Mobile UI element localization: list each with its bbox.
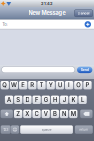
staticText: G	[44, 96, 48, 103]
staticText: C	[34, 110, 38, 117]
staticText: S	[16, 96, 20, 103]
button[interactable]: X	[23, 110, 31, 118]
button[interactable]: Z	[14, 110, 22, 118]
button[interactable]: T	[37, 81, 46, 89]
button[interactable]: K	[69, 96, 77, 104]
staticText: D	[25, 96, 29, 103]
button[interactable]: V	[42, 110, 50, 118]
button[interactable]: L	[78, 96, 87, 104]
button[interactable]: C	[32, 110, 41, 118]
staticText: return	[79, 128, 88, 132]
button[interactable]: W	[10, 81, 18, 89]
staticText: T	[39, 82, 43, 89]
staticText: H	[53, 96, 57, 103]
button[interactable]: return	[75, 125, 93, 134]
staticText: J	[63, 96, 66, 103]
button[interactable]: 123	[1, 125, 11, 134]
staticText: O	[76, 82, 80, 89]
staticText: Y	[49, 82, 53, 89]
button[interactable]: Add contact	[84, 20, 92, 28]
staticText: Send	[81, 68, 89, 72]
staticText: Z	[16, 110, 20, 117]
staticText: L	[81, 96, 84, 103]
staticText: P	[85, 82, 89, 89]
button[interactable]: F	[32, 96, 41, 104]
staticText: 123	[3, 127, 8, 132]
staticText: I	[68, 82, 70, 89]
staticText: To:	[2, 22, 8, 27]
button[interactable]: M	[69, 110, 77, 118]
staticText: N	[62, 110, 66, 117]
staticText: U	[58, 82, 62, 89]
staticText: space	[41, 128, 51, 132]
staticText: New Message	[28, 9, 65, 16]
button[interactable]: G	[42, 96, 50, 104]
button[interactable]	[1, 110, 13, 118]
button[interactable]: A	[5, 96, 13, 104]
staticText: K	[71, 96, 75, 103]
button[interactable]: Cancel	[74, 10, 93, 17]
button[interactable]	[80, 110, 92, 118]
staticText: A	[7, 96, 11, 103]
staticText: F	[35, 96, 38, 103]
button[interactable]: H	[51, 96, 59, 104]
button[interactable]: Q	[1, 81, 9, 89]
staticText: R	[30, 82, 34, 89]
button[interactable]: I	[65, 81, 73, 89]
staticText: W	[11, 82, 17, 89]
button[interactable]: B	[51, 110, 59, 118]
staticText: B	[53, 110, 57, 117]
button[interactable]: R	[28, 81, 36, 89]
button[interactable]: P	[83, 81, 92, 89]
button[interactable]: D	[23, 96, 32, 104]
button[interactable]: J	[60, 96, 68, 104]
button[interactable]: Send	[77, 67, 92, 73]
staticText: E	[21, 82, 25, 89]
staticText: Cancel	[78, 11, 90, 15]
button[interactable]: N	[60, 110, 68, 118]
button[interactable]: space	[20, 125, 73, 134]
staticText: V	[44, 110, 48, 117]
button[interactable]: S	[14, 96, 22, 104]
staticText: 21:42	[41, 1, 53, 6]
button[interactable]: E	[19, 81, 27, 89]
staticText: X	[25, 110, 29, 117]
button[interactable]: O	[74, 81, 82, 89]
button[interactable]: U	[56, 81, 64, 89]
staticText: Q	[2, 82, 7, 89]
button[interactable]	[11, 125, 19, 134]
staticText: M	[71, 110, 76, 117]
button[interactable]: Y	[46, 81, 55, 89]
